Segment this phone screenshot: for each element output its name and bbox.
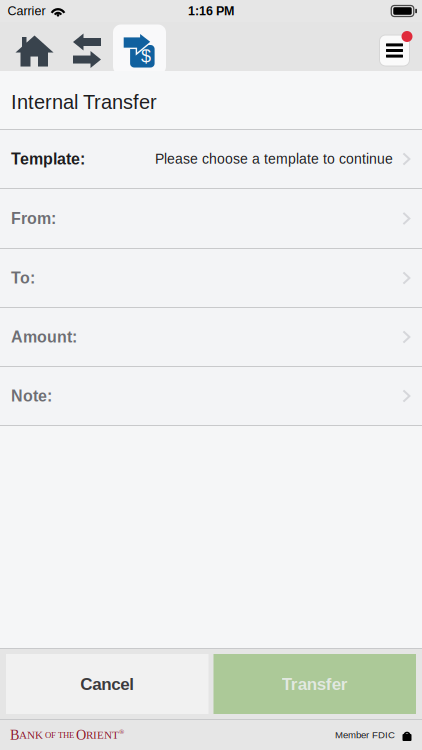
staticText: Transfer xyxy=(282,674,348,693)
button[interactable]: To: xyxy=(0,249,422,307)
staticText: 1:16 PM xyxy=(188,4,234,18)
button[interactable]: Note: xyxy=(0,367,422,425)
button[interactable]: Amount: xyxy=(0,308,422,366)
staticText: Internal Transfer xyxy=(11,91,157,113)
staticText: Amount: xyxy=(11,328,77,346)
staticText: $ xyxy=(141,46,151,66)
staticText: OF THE xyxy=(43,730,76,740)
staticText: O xyxy=(76,727,86,743)
button[interactable]: Template: xyxy=(0,130,422,188)
staticText: Carrier xyxy=(7,4,45,18)
staticText: B xyxy=(10,727,19,743)
staticText: ® xyxy=(119,728,124,736)
staticText: Template: xyxy=(11,150,85,168)
staticText: From: xyxy=(11,210,56,227)
button[interactable]: Home xyxy=(8,22,61,71)
staticText: To: xyxy=(11,269,35,287)
staticText: RIENT xyxy=(86,729,119,741)
staticText: ANK xyxy=(19,729,43,741)
button[interactable]: Transfer xyxy=(213,654,416,714)
staticText: Note: xyxy=(11,387,52,405)
button[interactable]: Cancel xyxy=(6,654,208,714)
button[interactable]: Internal Transfer xyxy=(113,22,166,71)
staticText: Member FDIC xyxy=(335,730,395,740)
staticText: Cancel xyxy=(80,674,134,693)
button[interactable]: Transfers xyxy=(61,22,113,71)
button[interactable]: From: xyxy=(0,189,422,248)
button[interactable]: Menu xyxy=(378,22,411,71)
staticText: Please choose a template to continue xyxy=(155,151,393,167)
